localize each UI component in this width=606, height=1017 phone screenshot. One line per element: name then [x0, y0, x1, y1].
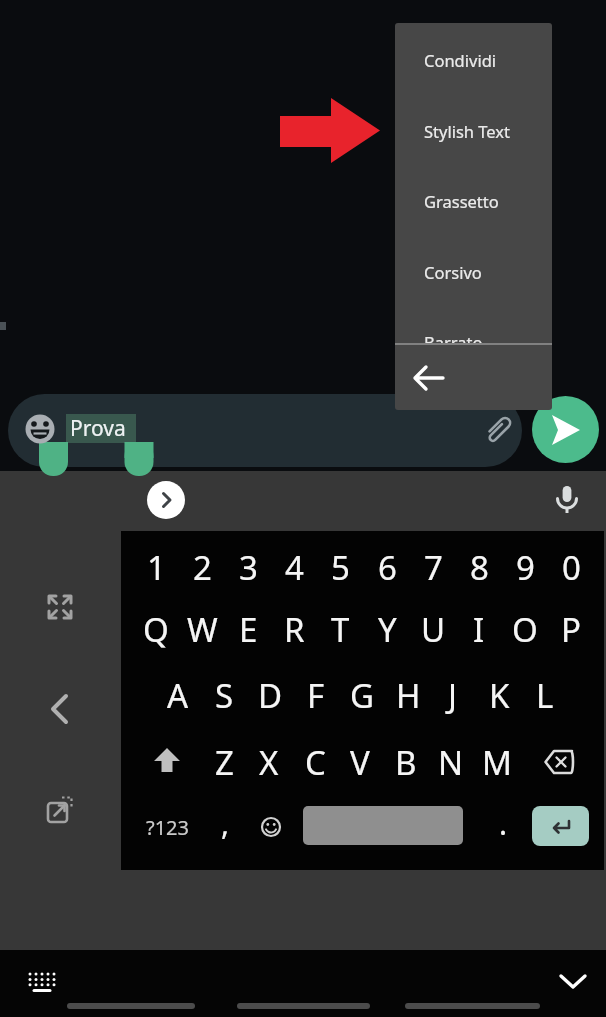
- button[interactable]: J: [430, 663, 476, 727]
- button[interactable]: [147, 481, 185, 519]
- button[interactable]: D: [247, 663, 293, 727]
- staticText: T: [331, 607, 350, 652]
- staticText: O: [512, 607, 538, 652]
- staticText: Prova: [70, 414, 126, 443]
- button[interactable]: 5: [317, 535, 363, 599]
- button[interactable]: O: [502, 597, 548, 661]
- button[interactable]: [303, 806, 463, 845]
- staticText: 6: [378, 545, 397, 590]
- button[interactable]: X: [246, 730, 292, 794]
- staticText: 7: [424, 545, 443, 590]
- button[interactable]: F: [293, 663, 339, 727]
- button[interactable]: [553, 484, 581, 516]
- staticText: J: [448, 673, 458, 718]
- staticText: B: [395, 740, 417, 785]
- button[interactable]: [480, 410, 516, 448]
- staticText: A: [167, 673, 189, 718]
- button[interactable]: 0: [548, 535, 594, 599]
- button[interactable]: Barrato: [395, 307, 552, 343]
- staticText: Barrato: [424, 331, 483, 343]
- staticText: N: [438, 740, 464, 785]
- staticText: Y: [378, 607, 397, 652]
- button[interactable]: 9: [502, 535, 548, 599]
- button[interactable]: Stylish Text: [395, 96, 552, 166]
- button[interactable]: Q: [133, 597, 179, 661]
- button[interactable]: K: [476, 663, 522, 727]
- staticText: P: [561, 607, 581, 652]
- button[interactable]: [395, 345, 552, 410]
- button[interactable]: S: [201, 663, 247, 727]
- staticText: W: [187, 607, 218, 652]
- staticText: H: [396, 673, 421, 718]
- staticText: 1: [147, 545, 166, 590]
- button[interactable]: P: [548, 597, 594, 661]
- button[interactable]: [139, 729, 195, 793]
- button[interactable]: 7: [410, 535, 456, 599]
- staticText: ?123: [146, 814, 189, 841]
- button[interactable]: 6: [364, 535, 410, 599]
- button[interactable]: [249, 799, 293, 855]
- button[interactable]: Z: [201, 730, 247, 794]
- staticText: X: [259, 740, 279, 785]
- staticText: U: [421, 607, 446, 652]
- staticText: R: [284, 607, 305, 652]
- staticText: L: [536, 673, 554, 718]
- button[interactable]: H: [385, 663, 431, 727]
- button[interactable]: C: [292, 730, 338, 794]
- button[interactable]: W: [179, 597, 225, 661]
- button[interactable]: L: [522, 663, 568, 727]
- button[interactable]: V: [337, 730, 383, 794]
- button[interactable]: G: [339, 663, 385, 727]
- button[interactable]: Corsivo: [395, 237, 552, 307]
- button[interactable]: .: [480, 791, 526, 855]
- button[interactable]: [46, 794, 76, 824]
- button[interactable]: M: [474, 730, 520, 794]
- staticText: 4: [285, 545, 304, 590]
- staticText: F: [307, 673, 325, 718]
- button[interactable]: [532, 396, 599, 463]
- staticText: S: [215, 673, 234, 718]
- button[interactable]: 2: [179, 535, 225, 599]
- button[interactable]: U: [410, 597, 456, 661]
- button[interactable]: [25, 414, 55, 444]
- button[interactable]: 3: [225, 535, 271, 599]
- button[interactable]: [556, 966, 590, 996]
- staticText: 0: [562, 545, 581, 590]
- button[interactable]: R: [271, 597, 317, 661]
- button[interactable]: Grassetto: [395, 166, 552, 236]
- button[interactable]: T: [317, 597, 363, 661]
- staticText: Corsivo: [424, 261, 482, 283]
- button[interactable]: [46, 694, 74, 724]
- button[interactable]: [532, 806, 589, 846]
- staticText: 8: [470, 545, 489, 590]
- staticText: V: [350, 740, 370, 785]
- button[interactable]: [44, 591, 76, 623]
- button[interactable]: ,: [202, 791, 248, 855]
- staticText: M: [482, 740, 512, 785]
- button[interactable]: 4: [271, 535, 317, 599]
- staticText: Q: [143, 607, 169, 652]
- button[interactable]: E: [225, 597, 271, 661]
- staticText: G: [350, 673, 375, 718]
- button[interactable]: Condividi: [395, 25, 552, 95]
- button[interactable]: ?123: [137, 799, 197, 855]
- staticText: 9: [516, 545, 535, 590]
- button[interactable]: [8, 394, 522, 467]
- button[interactable]: 1: [133, 535, 179, 599]
- button[interactable]: 8: [456, 535, 502, 599]
- button[interactable]: I: [456, 597, 502, 661]
- button[interactable]: B: [383, 730, 429, 794]
- staticText: 2: [193, 545, 212, 590]
- button[interactable]: N: [428, 730, 474, 794]
- staticText: I: [473, 607, 485, 652]
- staticText: Grassetto: [424, 190, 499, 212]
- staticText: Stylish Text: [424, 120, 511, 142]
- staticText: D: [258, 673, 283, 718]
- button[interactable]: [531, 730, 587, 794]
- button[interactable]: Y: [364, 597, 410, 661]
- button[interactable]: A: [155, 663, 201, 727]
- staticText: 3: [239, 545, 258, 590]
- staticText: Z: [215, 740, 234, 785]
- staticText: C: [305, 740, 326, 785]
- button[interactable]: [26, 968, 58, 996]
